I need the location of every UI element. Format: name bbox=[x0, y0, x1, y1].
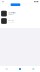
button[interactable]: Sunrise bbox=[0, 17, 40, 25]
button[interactable]: Browse bbox=[13, 66, 27, 72]
staticText: 9:41 bbox=[1, 1, 4, 3]
staticText: Sunrise bbox=[8, 19, 14, 21]
staticText: Late Night bbox=[8, 12, 16, 13]
button[interactable]: Search bbox=[27, 66, 40, 72]
button[interactable]: Featured bbox=[11, 3, 20, 6]
staticText: Acoustic bbox=[8, 21, 14, 23]
button[interactable]: Library bbox=[0, 66, 13, 72]
staticText: Ambient bbox=[8, 14, 13, 15]
button[interactable]: Late Night bbox=[0, 10, 40, 17]
